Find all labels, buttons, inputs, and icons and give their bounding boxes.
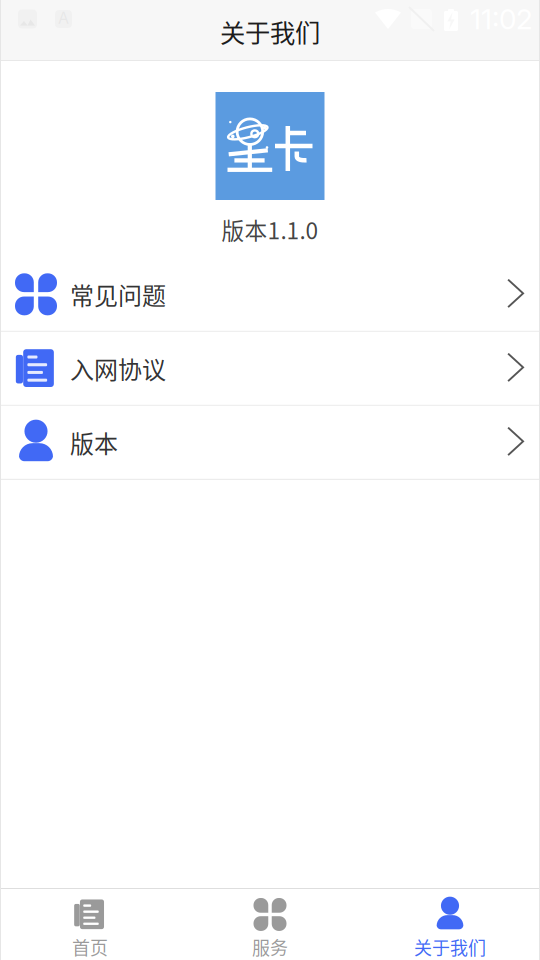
staticText: 入网协议	[70, 351, 166, 386]
staticText: 服务	[252, 934, 288, 960]
button[interactable]: 常见问题	[0, 258, 540, 331]
staticText: 关于我们	[414, 934, 486, 960]
staticText: 首页	[72, 934, 108, 960]
staticText: 版本1.1.0	[221, 213, 318, 246]
button[interactable]: 首页	[0, 889, 180, 960]
button[interactable]: 关于我们	[360, 889, 540, 960]
staticText: A	[58, 8, 69, 28]
staticText: 常见问题	[70, 277, 166, 312]
staticText: 版本	[70, 425, 118, 460]
button[interactable]: 入网协议	[0, 332, 540, 405]
staticText: 关于我们	[220, 13, 320, 50]
button[interactable]: 服务	[180, 889, 360, 960]
button[interactable]: 版本	[0, 406, 540, 479]
